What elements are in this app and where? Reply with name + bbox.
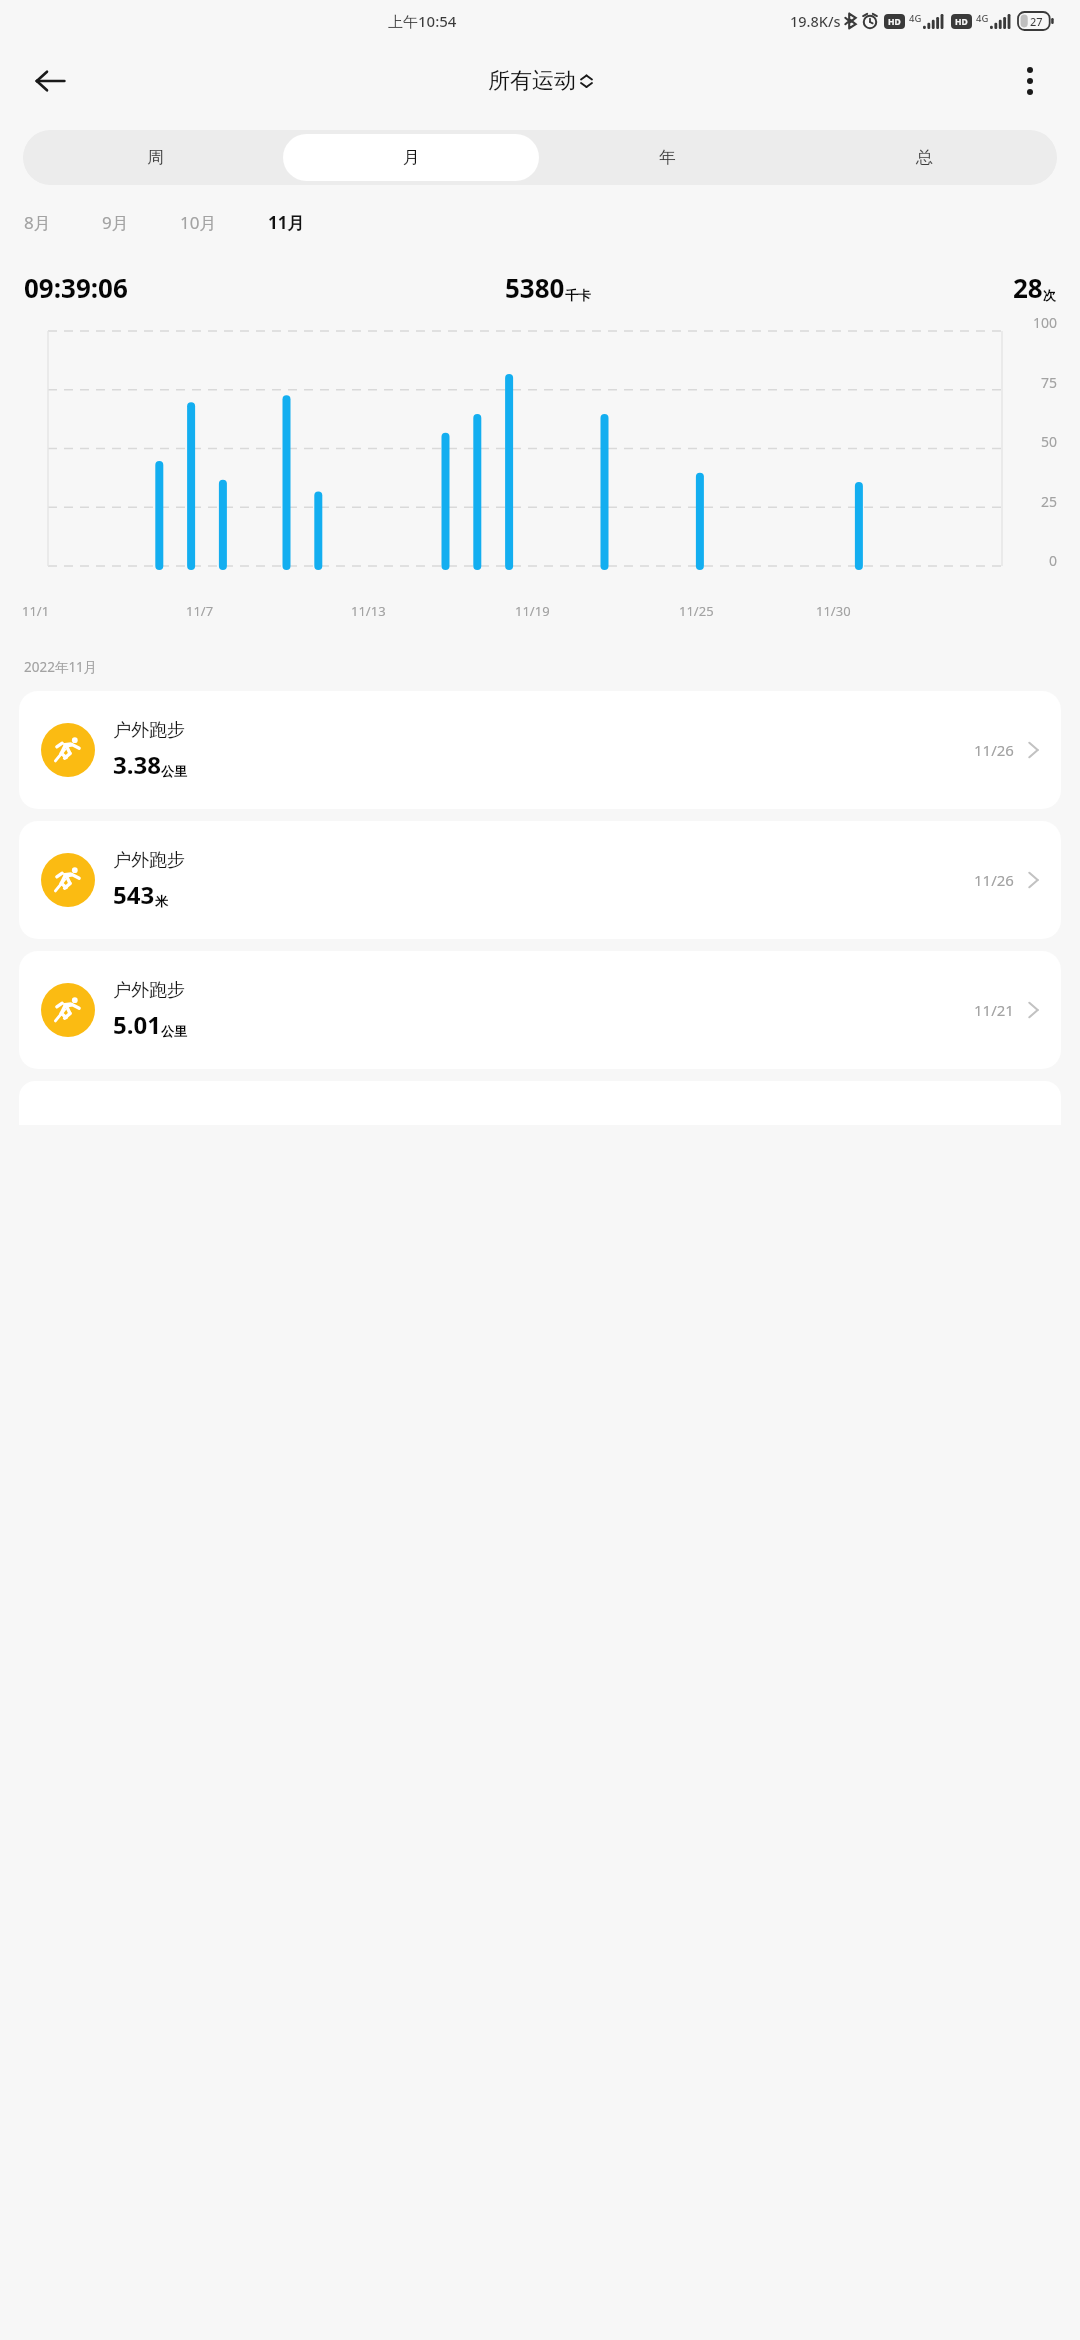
staticText: 户外跑步: [113, 979, 185, 1002]
staticText: 5380: [505, 270, 565, 305]
staticText: 周: [147, 147, 164, 168]
staticText: 11/1: [22, 602, 50, 620]
button[interactable]: 年: [539, 134, 796, 181]
staticText: 11/21: [974, 1000, 1014, 1020]
staticText: HD: [955, 16, 968, 28]
button[interactable]: More options: [1004, 55, 1056, 107]
staticText: 11月: [268, 211, 305, 234]
staticText: 11/13: [351, 602, 386, 620]
staticText: 公里: [161, 763, 187, 779]
staticText: 4G: [976, 12, 989, 25]
staticText: 11/7: [186, 602, 214, 620]
button[interactable]: 9月: [102, 211, 180, 234]
button[interactable]: 总: [796, 134, 1053, 181]
staticText: 11/30: [816, 602, 851, 620]
staticText: 25: [1041, 492, 1058, 511]
button[interactable]: 所有运动: [488, 67, 593, 95]
staticText: 年: [659, 147, 676, 168]
staticText: 19.8K/s: [790, 11, 841, 31]
staticText: 11/26: [974, 870, 1014, 890]
button[interactable]: 周: [27, 134, 283, 181]
button[interactable]: 户外跑步: [19, 821, 1061, 939]
button[interactable]: 11月: [268, 211, 346, 234]
button[interactable]: 10月: [180, 211, 268, 234]
staticText: 米: [155, 893, 168, 909]
staticText: 10月: [180, 211, 217, 234]
staticText: 户外跑步: [113, 719, 185, 742]
staticText: 543: [113, 878, 155, 911]
staticText: 0: [1049, 551, 1058, 570]
button[interactable]: 户外跑步: [19, 691, 1061, 809]
staticText: 100: [1033, 313, 1058, 332]
staticText: 3.38: [113, 748, 161, 781]
staticText: 28: [1013, 270, 1043, 305]
button[interactable]: 户外跑步: [19, 951, 1061, 1069]
staticText: 11/25: [679, 602, 714, 620]
staticText: 11/19: [515, 602, 550, 620]
staticText: 公里: [161, 1023, 187, 1039]
staticText: 75: [1041, 373, 1058, 392]
button[interactable]: 8月: [24, 211, 102, 234]
staticText: 上午10:54: [388, 11, 457, 31]
staticText: 27: [1030, 14, 1043, 29]
staticText: 户外跑步: [113, 849, 185, 872]
staticText: 09:39:06: [24, 270, 128, 305]
staticText: 月: [403, 147, 420, 168]
staticText: 4G: [909, 12, 922, 25]
staticText: 次: [1043, 287, 1056, 303]
staticText: 11/26: [974, 740, 1014, 760]
staticText: 50: [1041, 432, 1058, 451]
staticText: 5.01: [113, 1008, 161, 1041]
staticText: 所有运动: [488, 67, 576, 95]
staticText: 8月: [24, 211, 51, 234]
staticText: HD: [888, 16, 901, 28]
button[interactable]: Back: [24, 55, 76, 107]
staticText: 千卡: [565, 287, 591, 303]
staticText: 2022年11月: [24, 658, 98, 676]
button[interactable]: 月: [283, 134, 539, 181]
staticText: 总: [916, 147, 933, 168]
staticText: 9月: [102, 211, 129, 234]
